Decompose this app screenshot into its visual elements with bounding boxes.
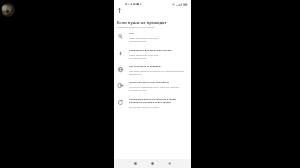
staticText: пуш-уведомлений: [129, 57, 147, 60]
staticText: Попробуйте выйти из аккаунта в своём в С…: [129, 98, 177, 104]
button[interactable]: Re-login: [114, 96, 191, 110]
staticText: Это поможет обновить профиль: [129, 106, 160, 109]
staticText: Некоторые мобильные операторы за границе…: [129, 70, 185, 73]
staticText: Проверьте несколько частых причин: [117, 26, 155, 29]
staticText: После этого уведомления могут перестать …: [129, 86, 180, 89]
staticText: VPN: [129, 32, 134, 35]
button[interactable]: Battery saver app: [114, 47, 191, 61]
staticText: пуш-уведомлений: [129, 40, 147, 43]
button[interactable]: Home: [148, 159, 157, 168]
staticText: Нет интернета за рубежом: [129, 65, 161, 68]
staticText: Если пуши не приходят: [117, 20, 167, 26]
staticText: Смена сим-карты или смартфона: [129, 81, 169, 84]
button[interactable]: SIM change: [114, 79, 191, 93]
button[interactable]: Back: [117, 8, 122, 13]
staticText: Приложение для экономии батареи: [129, 49, 172, 52]
staticText: Может блокировать получение: [129, 37, 159, 40]
button[interactable]: Back: [165, 159, 174, 168]
button[interactable]: Recents: [131, 159, 140, 168]
staticText: в течение 24 часов: [129, 89, 147, 92]
button[interactable]: VPN: [114, 30, 191, 44]
button[interactable]: Abroad: [114, 63, 191, 77]
staticText: Может блокировать получение: [129, 54, 159, 57]
staticText: уведомления: [129, 73, 142, 76]
